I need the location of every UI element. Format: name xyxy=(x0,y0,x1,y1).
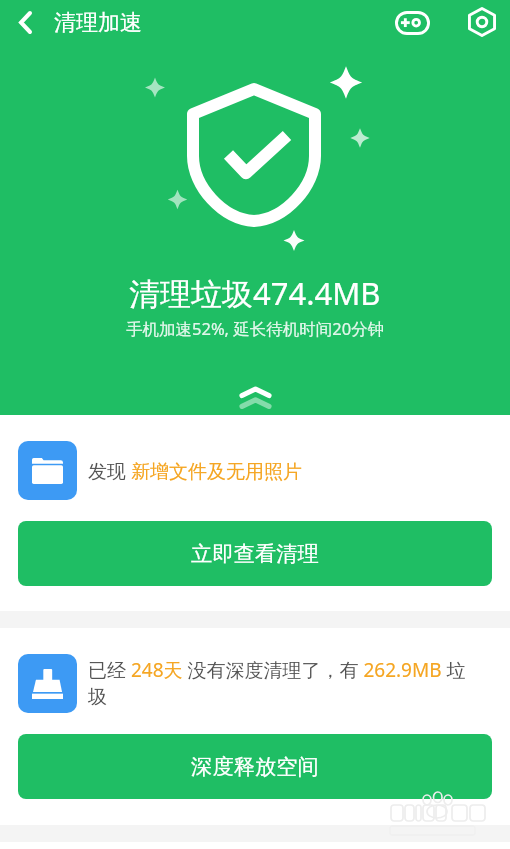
button[interactable]: 发现 新增文件及无用照片 xyxy=(0,437,510,504)
button[interactable]: 立即查看清理 xyxy=(18,521,492,586)
button[interactable]: Settings xyxy=(458,0,506,44)
button[interactable]: Back xyxy=(1,0,49,46)
staticText: 立即查看清理 xyxy=(191,540,319,567)
staticText: 清理加速 xyxy=(54,9,142,37)
staticText: 清理垃圾474.4MB xyxy=(129,272,381,314)
staticText: 发现 新增文件及无用照片 xyxy=(88,458,302,484)
button[interactable]: Expand xyxy=(220,377,290,415)
button[interactable]: Add shortcut xyxy=(388,0,437,46)
button[interactable]: 深度释放空间 xyxy=(18,734,492,799)
button[interactable]: 已经 248天 没有深度清理了，有 262.9MB 垃圾 xyxy=(0,650,510,717)
staticText: 手机加速52%, 延长待机时间20分钟 xyxy=(126,317,385,340)
staticText: 已经 248天 没有深度清理了，有 262.9MB 垃圾 xyxy=(88,657,480,708)
staticText: 深度释放空间 xyxy=(191,753,319,780)
